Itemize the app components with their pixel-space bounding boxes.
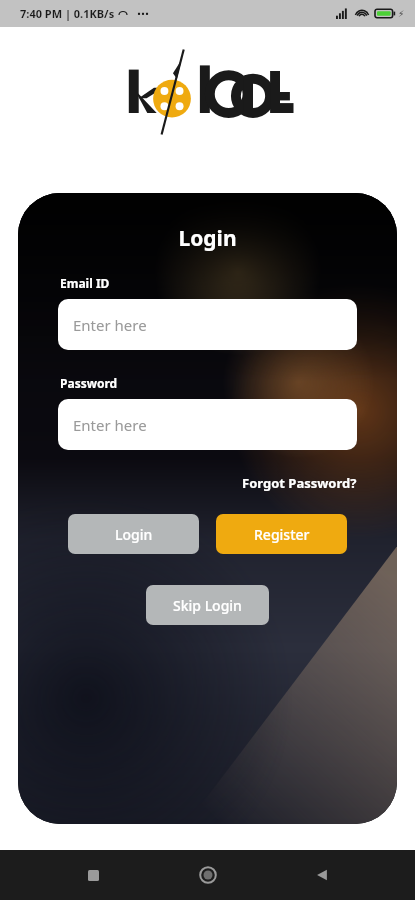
button[interactable]: Back (300, 853, 344, 897)
staticText: Login (18, 224, 397, 253)
button[interactable]: Register (216, 514, 347, 554)
button[interactable]: Enter here (58, 399, 357, 450)
staticText: 7:40 PM | 0.1KB/s (20, 6, 115, 21)
button[interactable]: Login (68, 514, 199, 554)
staticText: ⋯ (137, 7, 149, 21)
button[interactable]: Skip Login (146, 585, 269, 625)
staticText: Email ID (60, 275, 110, 291)
staticText: Password (60, 375, 118, 391)
button[interactable]: Enter here (58, 299, 357, 350)
button[interactable]: Forgot Password? (242, 474, 357, 492)
button[interactable]: Recent apps (71, 853, 115, 897)
button[interactable]: Home (186, 853, 230, 897)
staticText: ⚡ (398, 9, 405, 19)
staticText: Enter here (73, 415, 147, 435)
staticText: Login (115, 525, 153, 544)
staticText: Skip Login (173, 596, 242, 615)
staticText: Register (254, 525, 310, 544)
staticText: Enter here (73, 315, 147, 335)
